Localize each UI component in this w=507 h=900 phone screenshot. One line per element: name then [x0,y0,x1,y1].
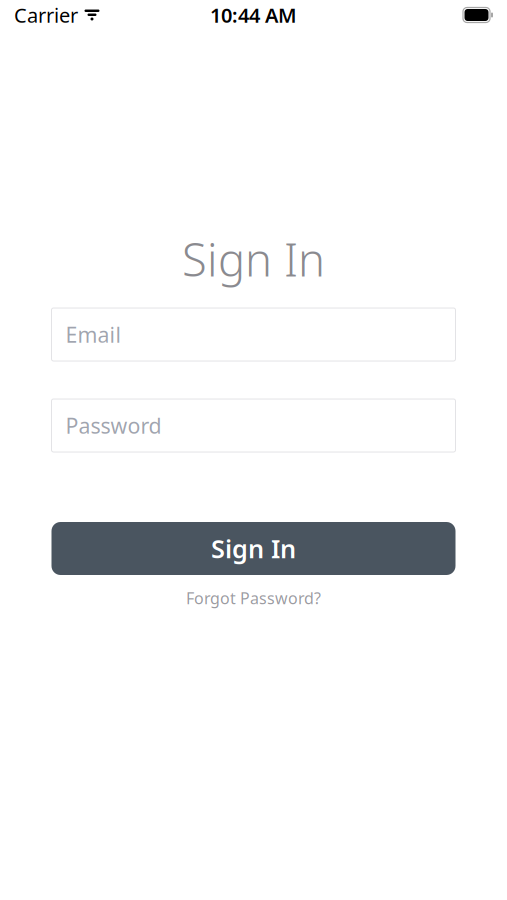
button[interactable]: Email [51,308,455,361]
staticText: Forgot Password? [186,587,321,609]
button[interactable]: Forgot Password? [51,587,455,609]
staticText: Sign In [211,532,296,565]
button[interactable]: Password [51,399,455,452]
staticText: Sign In [182,229,325,289]
staticText: Carrier [14,2,78,28]
staticText: 10:44 AM [210,2,297,28]
staticText: Email [65,320,121,349]
button[interactable]: Sign In [51,522,455,575]
staticText: Password [65,411,161,440]
